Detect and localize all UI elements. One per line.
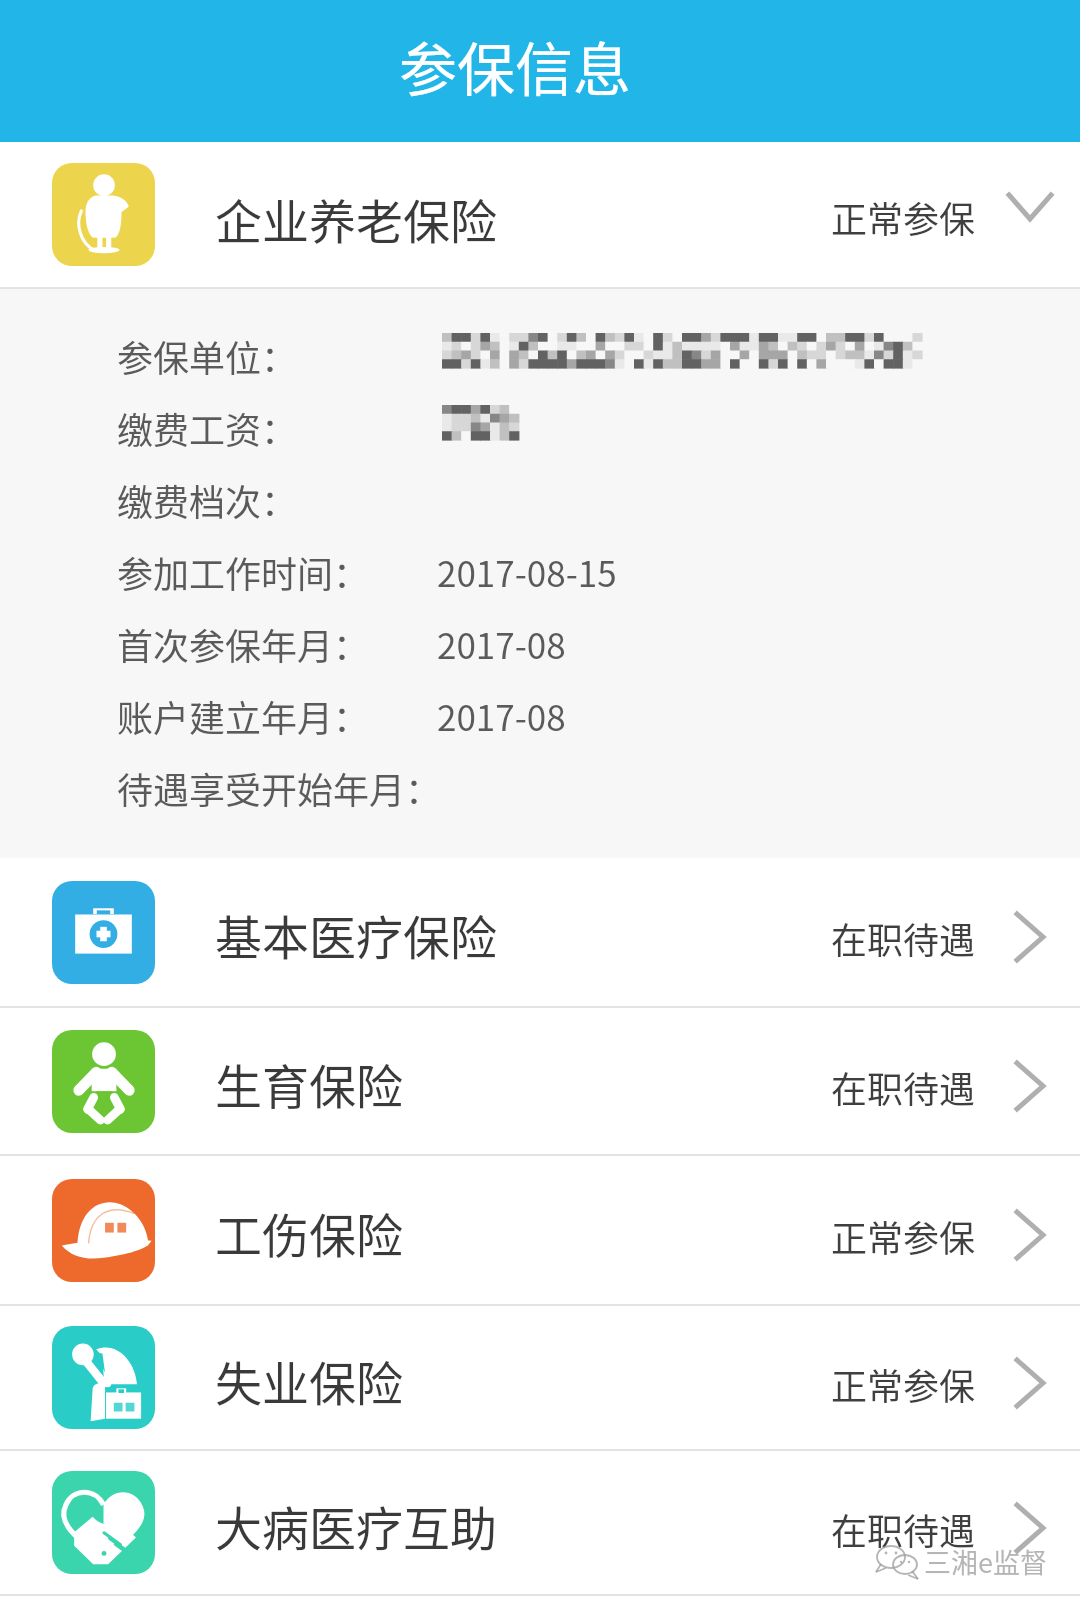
button[interactable]: 失业保险 [0, 1306, 1080, 1449]
button[interactable]: Open 大病医疗互助 [1000, 1493, 1060, 1553]
button[interactable]: 基本医疗保险 [0, 858, 1080, 1006]
staticText: 2017-08 [437, 618, 566, 669]
staticText: 首次参保年月： [117, 618, 370, 670]
button[interactable]: 工伤保险 [0, 1156, 1080, 1304]
staticText: 参保单位： [117, 330, 298, 382]
staticText: 正常参保 [831, 1358, 976, 1410]
button[interactable]: 企业养老保险 [0, 142, 1080, 287]
staticText: 正常参保 [831, 1210, 976, 1262]
staticText: 失业保险 [215, 1346, 403, 1414]
staticText: 生育保险 [215, 1049, 403, 1117]
staticText: 三湘e监督 [924, 1542, 1047, 1581]
staticText: 在职待遇 [831, 1061, 976, 1113]
staticText: 缴费工资： [117, 402, 298, 454]
staticText: 正常参保 [831, 191, 976, 243]
staticText: 参加工作时间： [117, 546, 370, 598]
button[interactable]: Open 生育保险 [1000, 1051, 1060, 1111]
staticText: 2017-08 [437, 690, 566, 741]
staticText: 基本医疗保险 [215, 900, 497, 968]
staticText: 在职待遇 [831, 912, 976, 964]
button[interactable]: 生育保险 [0, 1008, 1080, 1154]
staticText: 在职待遇 [831, 1503, 976, 1555]
staticText: 企业养老保险 [215, 184, 497, 252]
staticText: 2017-08-15 [437, 546, 617, 597]
staticText: 大病医疗互助 [215, 1491, 497, 1559]
button[interactable]: Collapse 企业养老保险 [1000, 185, 1060, 245]
button[interactable]: Open 基本医疗保险 [1000, 902, 1060, 962]
button[interactable]: Open 工伤保险 [1000, 1200, 1060, 1260]
staticText: 工伤保险 [215, 1198, 403, 1266]
staticText: 缴费档次： [117, 474, 298, 526]
staticText: 账户建立年月： [117, 690, 370, 742]
staticText: 待遇享受开始年月： [117, 762, 442, 814]
button[interactable]: 大病医疗互助 [0, 1451, 1080, 1594]
staticText: 参保信息 [399, 24, 632, 108]
button[interactable]: Open 失业保险 [1000, 1348, 1060, 1408]
